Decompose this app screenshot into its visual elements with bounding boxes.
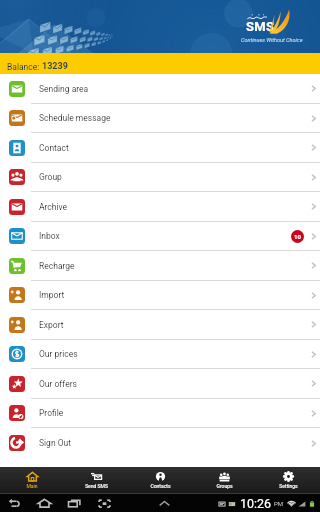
staticText: 10 [294,233,301,240]
staticText: Schedule message [39,113,111,123]
staticText: PM [274,500,284,507]
button[interactable]: Home [37,496,52,511]
staticText: Contact [39,143,69,153]
staticText: 10:26 [240,496,272,511]
staticText: Contacts [150,483,171,489]
staticText: Archive [39,202,68,212]
button[interactable]: Sending area [0,74,320,103]
staticText: Inbox [39,231,60,241]
button[interactable]: Sign Out [0,428,320,458]
staticText: Settings [279,483,298,489]
staticText: Main [26,483,38,489]
button[interactable]: Profile [0,399,320,427]
button[interactable]: Archive [0,192,320,221]
button[interactable]: Settings [256,467,320,493]
staticText: 13239 [42,61,68,72]
staticText: Recharge [39,261,75,271]
staticText: Balance: [7,62,42,72]
staticText: Send SMS [85,483,108,489]
button[interactable]: Send SMS [64,467,128,493]
staticText: SMS [246,19,275,34]
button[interactable]: Group [0,163,320,191]
button[interactable]: Groups [192,467,256,493]
staticText: Import [39,290,65,300]
button[interactable]: Back [7,496,22,511]
staticText: Sending area [39,84,89,94]
button[interactable]: Export [0,310,320,339]
button[interactable]: Recent apps [67,496,82,511]
staticText: Group [39,172,62,182]
button[interactable]: Contacts [128,467,192,493]
staticText: Export [39,320,64,330]
button[interactable]: Schedule message [0,104,320,132]
button[interactable]: Recharge [0,251,320,280]
button[interactable]: Screenshot [97,496,112,511]
button[interactable]: Import [0,281,320,309]
button[interactable]: Inbox [0,222,320,250]
staticText: Groups [216,483,233,489]
button[interactable]: Expand [157,496,172,511]
button[interactable]: Contact [0,133,320,162]
button[interactable]: Our prices [0,340,320,368]
staticText: Continues Without Choice [241,37,303,43]
staticText: Sign Out [39,438,72,448]
button[interactable]: Main [0,467,64,493]
staticText: Our offers [39,379,77,389]
staticText: Profile [39,408,64,418]
staticText: Our prices [39,349,78,359]
button[interactable]: Our offers [0,369,320,398]
